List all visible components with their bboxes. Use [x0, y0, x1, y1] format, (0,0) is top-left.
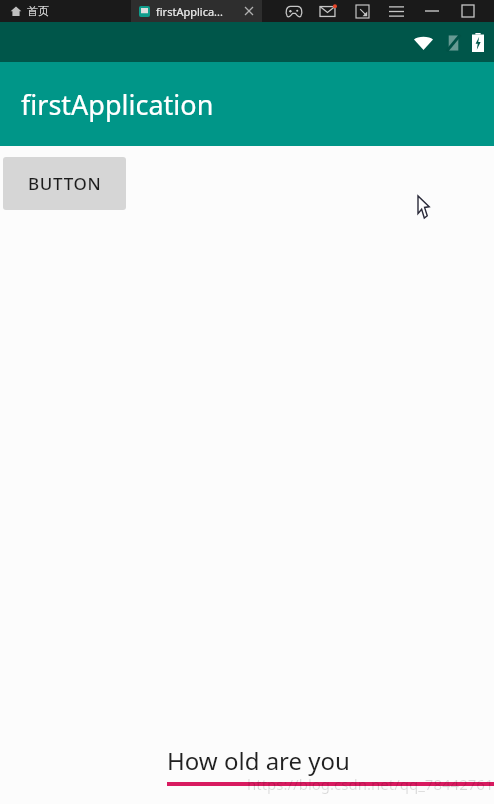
staticText: 首页 — [27, 4, 49, 18]
staticText: firstApplication — [21, 86, 214, 123]
button[interactable]: BUTTON — [3, 157, 126, 210]
staticText: https://blog.csdn.net/qq_78442761 — [247, 774, 494, 794]
button[interactable]: How old are you — [167, 744, 494, 804]
button[interactable]: Minimize — [422, 1, 442, 21]
button[interactable]: Resize — [352, 1, 372, 21]
button[interactable]: Maximize — [458, 1, 478, 21]
button[interactable]: Close tab — [242, 4, 256, 18]
button[interactable]: 首页 — [10, 0, 138, 22]
staticText: firstApplica... — [156, 4, 242, 19]
button[interactable]: firstApplica... — [131, 0, 262, 22]
button[interactable]: Games — [284, 1, 304, 21]
staticText: How old are you — [167, 744, 350, 777]
button[interactable]: Mail — [318, 1, 338, 21]
button[interactable]: Menu — [386, 1, 406, 21]
staticText: BUTTON — [28, 172, 102, 195]
